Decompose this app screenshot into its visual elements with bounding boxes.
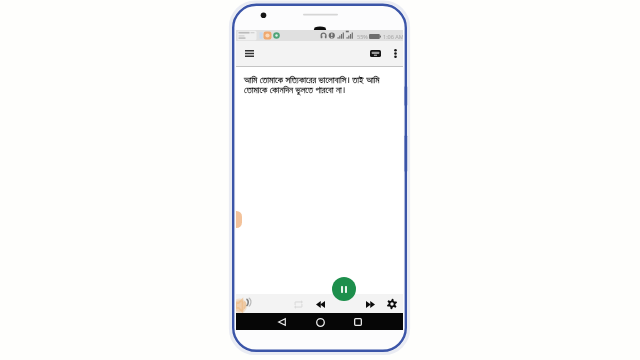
button[interactable]: Menu (241, 45, 257, 61)
button[interactable]: Repeat (290, 296, 306, 312)
staticText: আমি তোমাকে সত্যিকারের ভালোবাসি। তাই আমি … (244, 73, 391, 95)
staticText: 1:06 AM (383, 33, 403, 40)
button[interactable]: More options (387, 45, 403, 61)
staticText: 55% (357, 33, 368, 40)
button[interactable]: Home (312, 314, 328, 330)
button[interactable]: Settings (384, 296, 400, 312)
button[interactable]: Recent apps (350, 314, 366, 330)
button[interactable]: Fast forward (362, 296, 378, 312)
button[interactable]: Volume (236, 296, 255, 313)
button[interactable]: Cast screen (367, 45, 383, 61)
button[interactable]: Pause (332, 277, 356, 301)
button[interactable]: Rewind (312, 296, 328, 312)
button[interactable]: Back (274, 314, 290, 330)
